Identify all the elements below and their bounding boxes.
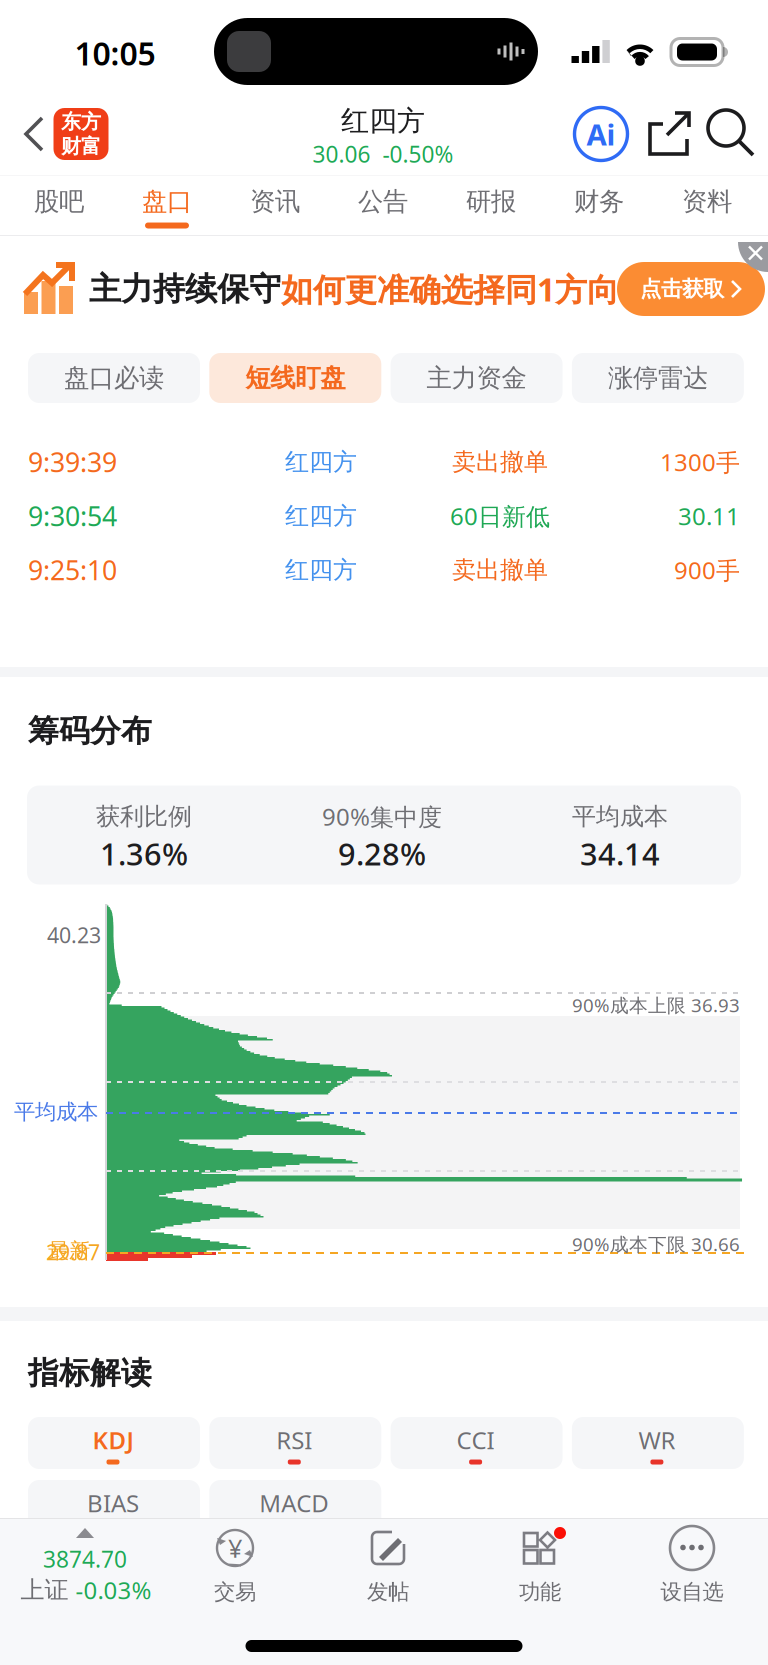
button[interactable]: 资料 — [654, 175, 760, 235]
button[interactable]: 点击获取 — [617, 262, 765, 316]
button[interactable]: KDJ — [28, 1417, 200, 1469]
button[interactable]: 主力资金 — [391, 353, 563, 403]
staticText: 资料 — [682, 186, 732, 217]
staticText: 主力资金 — [427, 362, 527, 393]
staticText: 短线盯盘 — [245, 362, 345, 393]
staticText: BIAS — [87, 1487, 139, 1519]
button[interactable]: 资讯 — [222, 175, 328, 235]
staticText: 平均成本 — [14, 1099, 98, 1125]
staticText: 30.11 — [678, 500, 740, 532]
staticText: 红四方 — [285, 501, 357, 531]
button[interactable]: 短线盯盘 — [209, 353, 381, 403]
staticText: 29.87 — [46, 1238, 100, 1266]
button[interactable]: 功能 — [465, 1519, 615, 1619]
button[interactable]: 盘口必读 — [28, 353, 200, 403]
button[interactable]: 涨停雷达 — [572, 353, 744, 403]
button[interactable]: 设自选 — [617, 1519, 767, 1619]
staticText: 发帖 — [367, 1579, 409, 1605]
staticText: 9.28% — [338, 833, 426, 874]
staticText: 红四方 — [285, 555, 357, 585]
button[interactable]: 研报 — [438, 175, 544, 235]
staticText: 9:39:39 — [28, 444, 117, 480]
staticText: 设自选 — [660, 1579, 723, 1605]
staticText: 资讯 — [250, 186, 300, 217]
staticText: KDJ — [92, 1424, 133, 1456]
button[interactable]: 盘口 — [114, 175, 220, 235]
staticText: MACD — [259, 1487, 329, 1519]
button[interactable]: 9:25:10 — [0, 543, 768, 597]
button[interactable]: Close advertisement — [738, 242, 768, 272]
staticText: 1.36% — [100, 833, 188, 874]
staticText: RSI — [276, 1424, 312, 1456]
button[interactable]: 9:39:39 — [0, 435, 768, 489]
button[interactable]: 发帖 — [313, 1519, 463, 1619]
staticText: 盘口 — [142, 186, 192, 217]
button[interactable]: WR — [572, 1417, 744, 1469]
button[interactable]: Shanghai Composite index — [0, 1519, 190, 1619]
button[interactable]: MACD — [209, 1480, 381, 1532]
staticText: CCI — [457, 1424, 495, 1456]
staticText: 盘口必读 — [64, 362, 164, 393]
staticText: 红四方 — [341, 104, 425, 138]
staticText: 获利比例 — [96, 802, 192, 831]
staticText: 股吧 — [34, 186, 84, 217]
staticText: 40.23 — [47, 921, 101, 949]
staticText: 平均成本 — [572, 802, 668, 831]
staticText: 10:05 — [74, 32, 155, 74]
staticText: 公告 — [358, 186, 408, 217]
staticText: 财务 — [574, 186, 624, 217]
staticText: -0.03% — [75, 1574, 151, 1606]
staticText: 如何更准确选择同1方向 — [281, 268, 619, 310]
staticText: 9:25:10 — [28, 552, 117, 588]
staticText: 90%成本下限 30.66 — [572, 1232, 740, 1256]
staticText: 34.14 — [580, 833, 660, 874]
staticText: 主力持续保守 — [89, 269, 281, 309]
button[interactable]: Back — [6, 102, 62, 166]
button[interactable]: AI assistant — [572, 105, 630, 163]
staticText: 指标解读 — [28, 1354, 152, 1392]
staticText: 上证 — [20, 1575, 68, 1605]
staticText: 红四方 — [285, 447, 357, 477]
staticText: 卖出撤单 — [452, 555, 548, 585]
staticText: 1300手 — [660, 446, 740, 478]
staticText: 90%成本上限 36.93 — [572, 993, 740, 1017]
button[interactable]: Search — [708, 110, 756, 158]
staticText: 交易 — [214, 1579, 256, 1605]
staticText: 卖出撤单 — [452, 447, 548, 477]
button[interactable]: RSI — [209, 1417, 381, 1469]
staticText: 30.06 -0.50% — [312, 139, 453, 169]
staticText: 研报 — [466, 186, 516, 217]
staticText: 9:30:54 — [28, 498, 117, 534]
staticText: ¥ — [228, 1531, 242, 1565]
staticText: 东方 — [61, 109, 101, 134]
staticText: Ai — [586, 114, 615, 153]
staticText: 90%集中度 — [322, 801, 442, 832]
staticText: 最新 — [48, 1238, 90, 1264]
staticText: 3874.70 — [43, 1544, 127, 1574]
staticText: 筹码分布 — [28, 712, 152, 750]
staticText: 财富 — [61, 134, 101, 159]
staticText: 60日新低 — [450, 500, 550, 532]
button[interactable]: BIAS — [28, 1480, 200, 1532]
button[interactable]: 财务 — [546, 175, 652, 235]
button[interactable]: 公告 — [330, 175, 436, 235]
button[interactable]: East Money home — [53, 108, 108, 160]
staticText: 涨停雷达 — [608, 362, 708, 393]
button[interactable]: 股吧 — [6, 175, 112, 235]
button[interactable]: 9:30:54 — [0, 489, 768, 543]
button[interactable]: Share — [646, 109, 694, 159]
staticText: 900手 — [674, 554, 740, 586]
staticText: 功能 — [519, 1579, 561, 1605]
staticText: WR — [638, 1424, 675, 1456]
button[interactable]: ¥ — [160, 1519, 310, 1619]
staticText: 点击获取 — [640, 276, 724, 302]
button[interactable]: CCI — [391, 1417, 563, 1469]
